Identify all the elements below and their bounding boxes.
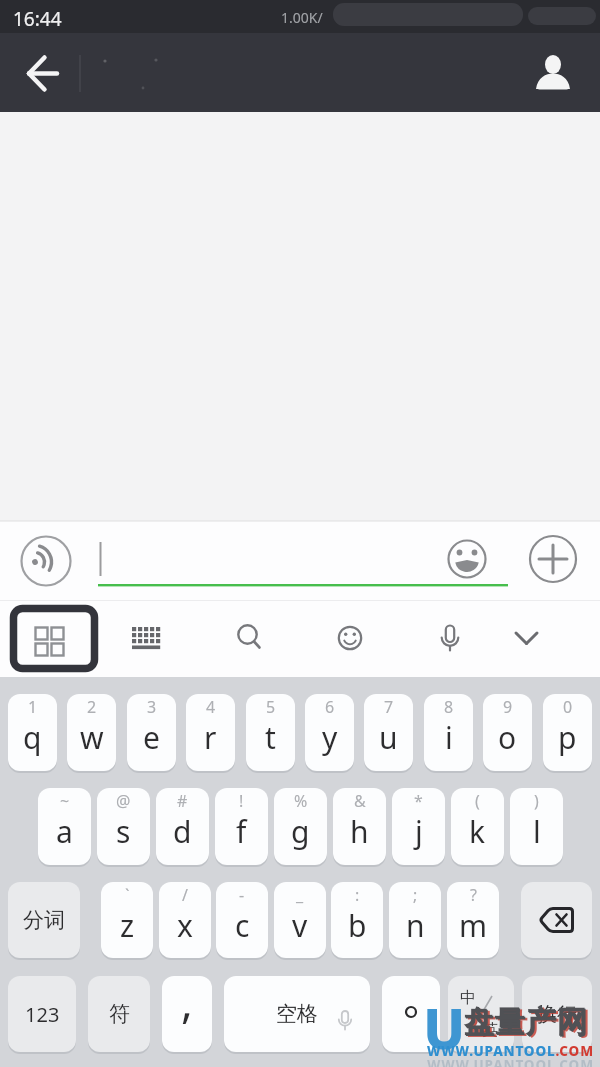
button[interactable] [382,976,440,1052]
button[interactable]: 123 [8,976,76,1052]
staticText: p [558,717,577,758]
staticText: 符 [109,1001,130,1027]
staticText: ~ [60,790,70,812]
staticText: c [235,905,250,946]
staticText: 123 [25,1001,60,1028]
staticText: e [143,717,160,758]
button[interactable]: 中 [448,976,514,1052]
staticText: s [116,811,131,852]
staticText: # [177,790,188,812]
button[interactable] [14,48,70,100]
button[interactable]: / [159,882,211,958]
button[interactable]: 2 [67,694,116,771]
staticText: 盘量产网 [466,1005,590,1043]
staticText: - [239,884,245,906]
button[interactable] [322,610,378,666]
staticText: ( [475,790,480,812]
staticText: : [355,884,360,906]
staticText: ) [534,790,539,812]
staticText: x [177,905,193,946]
staticText: 盘量产网 [464,1004,588,1042]
staticText: b [348,905,367,946]
button[interactable] [10,605,98,672]
staticText: ? [470,884,477,906]
staticText: w [80,717,104,758]
button[interactable]: # [156,788,209,865]
staticText: l [533,811,541,852]
staticText: ! [239,790,244,812]
button[interactable] [104,530,444,590]
staticText: v [292,905,308,946]
staticText: y [322,717,338,758]
button[interactable]: _ [274,882,326,958]
button[interactable] [18,533,74,589]
staticText: j [415,811,423,852]
button[interactable]: @ [97,788,150,865]
button[interactable]: * [392,788,445,865]
staticText: 8 [444,696,454,718]
staticText: a [56,811,73,852]
staticText: 2 [87,696,97,718]
button[interactable]: & [333,788,386,865]
button[interactable]: ) [510,788,563,865]
button[interactable]: 9 [483,694,532,771]
staticText: ; [413,884,418,906]
staticText: f [236,811,247,852]
button[interactable]: ( [451,788,504,865]
button[interactable] [498,610,554,666]
staticText: t [265,717,276,758]
button[interactable]: - [216,882,268,958]
button[interactable] [525,46,581,102]
button[interactable] [422,610,478,666]
staticText: n [406,905,425,946]
staticText: 9 [503,696,513,718]
staticText: _ [296,884,304,906]
button[interactable]: 6 [305,694,354,771]
staticText: d [173,811,192,852]
button[interactable]: % [274,788,327,865]
button[interactable]: ? [447,882,499,958]
staticText: 3 [147,696,157,718]
staticText: 16:44 [13,6,62,32]
button[interactable]: 4 [186,694,235,771]
staticText: h [350,811,369,852]
button[interactable]: 空格 [224,976,370,1052]
staticText: @ [116,790,131,812]
staticText: m [459,905,488,946]
staticText: 中 [460,988,476,1008]
staticText: , [181,971,193,1031]
button[interactable]: 换行 [522,976,592,1052]
button[interactable]: ` [101,882,153,958]
button[interactable] [527,533,579,585]
button[interactable]: 7 [364,694,413,771]
staticText: 空格 [276,1001,318,1027]
button[interactable]: 0 [543,694,592,771]
staticText: 7 [384,696,394,718]
staticText: 换行 [537,1002,577,1027]
button[interactable]: ~ [38,788,91,865]
staticText: * [414,790,423,812]
button[interactable]: ! [215,788,268,865]
staticText: u [379,717,398,758]
staticText: g [291,811,310,852]
staticText: 英 [482,1020,498,1040]
button[interactable]: , [162,976,212,1052]
staticText: 1.00K/ [281,8,323,27]
button[interactable] [441,533,493,585]
button[interactable]: 符 [88,976,150,1052]
button[interactable] [118,610,174,666]
staticText: k [469,811,486,852]
button[interactable]: : [331,882,383,958]
staticText: 分词 [23,907,65,933]
button[interactable]: 5 [246,694,295,771]
button[interactable]: 3 [127,694,176,771]
button[interactable] [521,882,592,958]
staticText: % [294,790,308,812]
staticText: r [204,717,217,758]
button[interactable]: ; [389,882,441,958]
button[interactable]: 8 [424,694,473,771]
button[interactable] [220,610,276,666]
button[interactable]: 1 [8,694,57,771]
button[interactable]: 分词 [8,882,80,958]
staticText: WWW.UPANTOOL.COM [427,1042,594,1060]
